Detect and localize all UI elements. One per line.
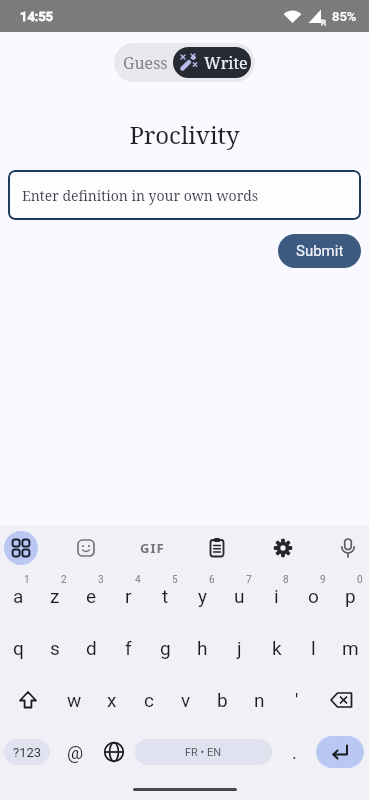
- staticText: x: [107, 689, 117, 711]
- staticText: 5: [172, 574, 178, 586]
- button[interactable]: i: [258, 570, 295, 622]
- button[interactable]: w: [56, 674, 93, 726]
- staticText: i: [274, 585, 279, 607]
- staticText: h: [197, 637, 208, 659]
- staticText: 3: [98, 574, 104, 586]
- staticText: @: [67, 742, 84, 763]
- button[interactable]: [69, 531, 103, 565]
- staticText: d: [86, 637, 97, 659]
- button[interactable]: Enter definition in your own words: [8, 170, 361, 220]
- button[interactable]: [200, 531, 234, 565]
- staticText: z: [50, 585, 60, 607]
- staticText: o: [308, 585, 319, 607]
- staticText: Proclivity: [0, 118, 369, 151]
- staticText: 1: [24, 574, 30, 586]
- staticText: e: [86, 585, 97, 607]
- button[interactable]: [331, 531, 365, 565]
- staticText: ?123: [13, 745, 42, 760]
- staticText: n: [254, 689, 265, 711]
- button[interactable]: x: [93, 674, 130, 726]
- button[interactable]: s: [36, 622, 73, 674]
- staticText: 4: [135, 574, 141, 586]
- staticText: p: [345, 585, 356, 607]
- button[interactable]: ': [278, 674, 315, 726]
- button[interactable]: h: [184, 622, 221, 674]
- button[interactable]: ?123: [4, 739, 50, 765]
- button[interactable]: c: [130, 674, 167, 726]
- staticText: u: [234, 585, 245, 607]
- staticText: R: [321, 18, 326, 27]
- button[interactable]: j: [221, 622, 258, 674]
- staticText: 6: [209, 574, 215, 586]
- staticText: ': [295, 689, 299, 711]
- button[interactable]: e: [73, 570, 110, 622]
- button[interactable]: [4, 531, 38, 565]
- button[interactable]: u: [221, 570, 258, 622]
- staticText: w: [67, 689, 82, 711]
- staticText: 8: [283, 574, 289, 586]
- staticText: q: [13, 637, 24, 659]
- staticText: a: [13, 585, 24, 607]
- button[interactable]: FR • EN: [135, 739, 272, 765]
- button[interactable]: Submit: [278, 234, 361, 268]
- staticText: r: [125, 585, 132, 607]
- staticText: t: [162, 585, 169, 607]
- button[interactable]: d: [73, 622, 110, 674]
- button[interactable]: Guess: [114, 43, 177, 82]
- staticText: f: [125, 637, 132, 659]
- staticText: m: [342, 637, 359, 659]
- staticText: 9: [320, 574, 326, 586]
- button[interactable]: n: [241, 674, 278, 726]
- button[interactable]: y: [184, 570, 221, 622]
- button[interactable]: g: [147, 622, 184, 674]
- staticText: Submit: [296, 242, 344, 260]
- staticText: 85%: [332, 9, 357, 24]
- staticText: v: [181, 689, 191, 711]
- button[interactable]: q: [0, 622, 36, 674]
- staticText: j: [237, 637, 242, 659]
- staticText: FR • EN: [185, 746, 222, 759]
- staticText: k: [272, 637, 282, 659]
- button[interactable]: [316, 736, 364, 768]
- staticText: Guess: [123, 52, 168, 74]
- button[interactable]: .: [272, 726, 316, 778]
- staticText: 2: [61, 574, 67, 586]
- staticText: y: [198, 585, 207, 607]
- button[interactable]: l: [295, 622, 332, 674]
- staticText: Enter definition in your own words: [22, 186, 259, 205]
- button[interactable]: o: [295, 570, 332, 622]
- staticText: s: [50, 637, 60, 659]
- button[interactable]: Write: [173, 47, 251, 78]
- staticText: 0: [357, 574, 363, 586]
- button[interactable]: m: [332, 622, 369, 674]
- button[interactable]: r: [110, 570, 147, 622]
- staticText: c: [144, 689, 154, 711]
- button[interactable]: b: [204, 674, 241, 726]
- button[interactable]: GIF: [135, 531, 169, 565]
- button[interactable]: a: [0, 570, 36, 622]
- button[interactable]: @: [50, 726, 100, 778]
- staticText: l: [311, 637, 316, 659]
- button[interactable]: [0, 674, 56, 726]
- button[interactable]: f: [110, 622, 147, 674]
- button[interactable]: k: [258, 622, 295, 674]
- staticText: g: [160, 637, 171, 659]
- button[interactable]: v: [167, 674, 204, 726]
- staticText: b: [217, 689, 228, 711]
- staticText: .: [292, 742, 297, 763]
- button[interactable]: t: [147, 570, 184, 622]
- button[interactable]: [100, 726, 128, 778]
- button[interactable]: p: [332, 570, 369, 622]
- button[interactable]: [315, 674, 369, 726]
- button[interactable]: z: [36, 570, 73, 622]
- staticText: Write: [204, 52, 248, 74]
- staticText: 14:55: [20, 9, 54, 24]
- staticText: 7: [246, 574, 252, 586]
- staticText: GIF: [140, 539, 165, 557]
- button[interactable]: [266, 531, 300, 565]
